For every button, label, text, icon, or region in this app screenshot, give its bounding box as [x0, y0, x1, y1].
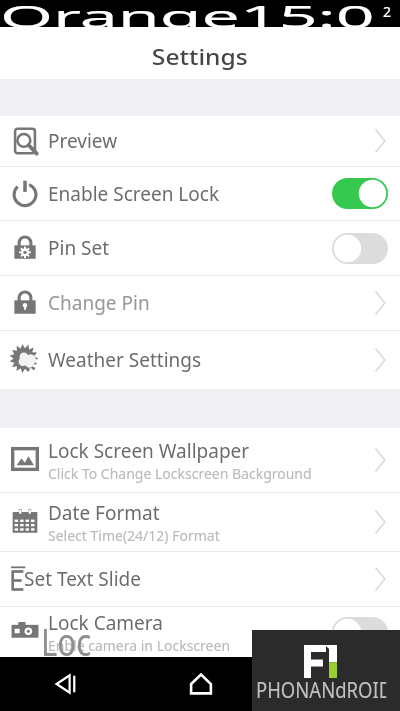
button[interactable]: Pin Set: [0, 221, 400, 276]
staticText: Set Text Slide: [24, 566, 142, 592]
staticText: Loc: [41, 615, 92, 667]
staticText: Enable Screen Lock: [48, 181, 220, 207]
button[interactable]: Enable Screen Lock: [0, 167, 400, 221]
button[interactable]: Lock Screen Wallpaper: [0, 428, 400, 493]
staticText: Date Format: [48, 500, 160, 526]
button[interactable]: Lock Camera: [0, 607, 400, 657]
button[interactable]: Weather Settings: [0, 331, 400, 389]
staticText: PHONANdROID: [256, 676, 386, 705]
button[interactable]: Home: [134, 657, 267, 711]
staticText: Click To Change Lockscreen Background: [48, 464, 312, 483]
staticText: Settings: [152, 42, 248, 70]
staticText: Lock Screen Wallpaper: [48, 438, 250, 464]
staticText: Pin Set: [48, 235, 110, 261]
staticText: Weather Settings: [48, 347, 202, 373]
staticText: Enble camera in Lockscreen: [48, 636, 231, 655]
button[interactable]: Date Format: [0, 493, 400, 552]
button[interactable]: Recents: [267, 657, 400, 711]
staticText: Preview: [48, 128, 118, 154]
button[interactable]: Change Pin: [0, 276, 400, 331]
staticText: Select Time(24/12) Format: [48, 526, 220, 545]
staticText: Change Pin: [48, 290, 150, 316]
staticText: Lock Camera: [48, 610, 163, 636]
staticText: Orange15:0: [0, 0, 376, 27]
button[interactable]: Preview: [0, 116, 400, 167]
staticText: 2: [383, 2, 392, 21]
button[interactable]: Set Text Slide: [0, 552, 400, 607]
button[interactable]: Back: [0, 657, 134, 711]
